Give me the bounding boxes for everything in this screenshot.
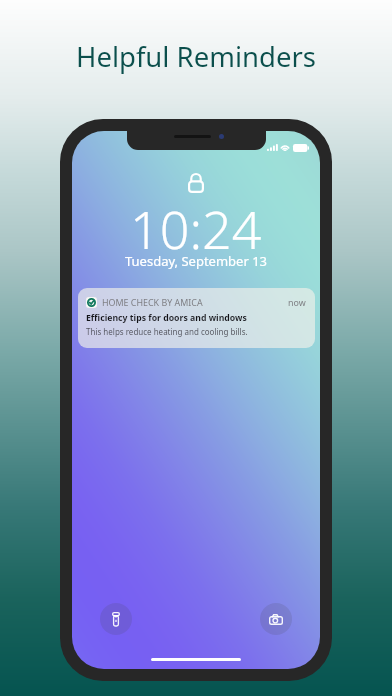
staticText: This helps reduce heating and cooling bi…: [86, 326, 248, 337]
button[interactable]: Flashlight: [100, 603, 132, 635]
button[interactable]: HOME CHECK BY AMICA: [78, 288, 315, 348]
staticText: Tuesday, September 13: [125, 252, 268, 270]
staticText: Efficiency tips for doors and windows: [86, 312, 247, 324]
staticText: Helpful Reminders: [0, 38, 392, 75]
button[interactable]: Camera: [260, 603, 292, 635]
staticText: now: [288, 296, 306, 308]
staticText: 10:24: [130, 193, 262, 264]
staticText: HOME CHECK BY AMICA: [102, 296, 203, 308]
